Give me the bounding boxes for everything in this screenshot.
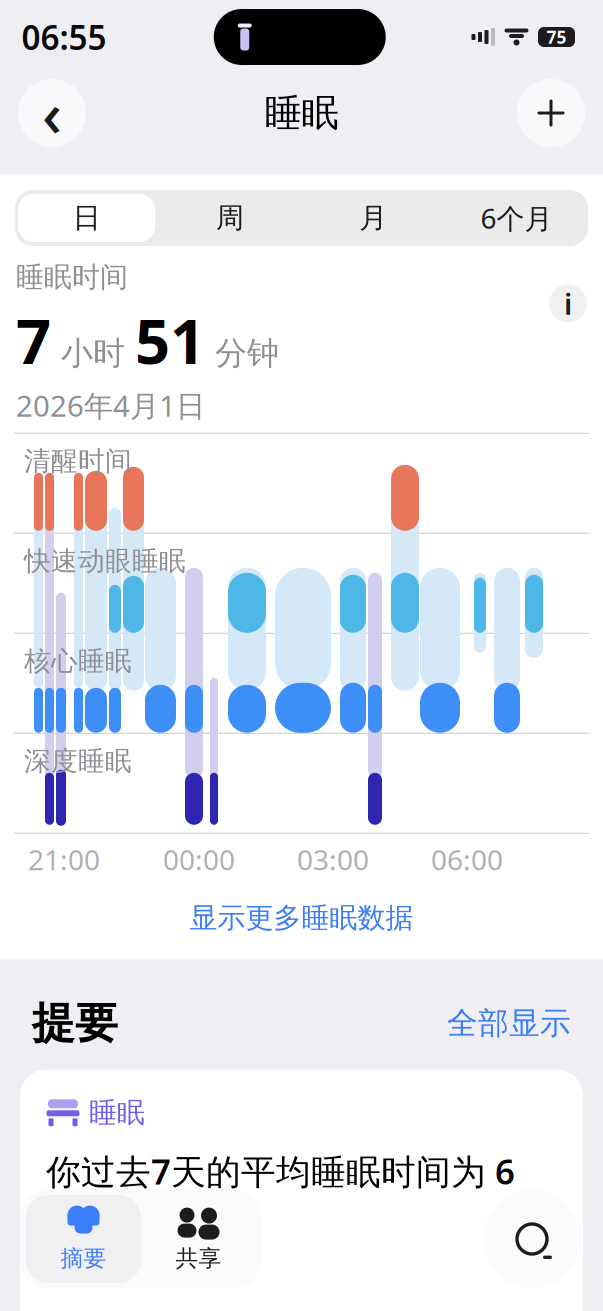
- button[interactable]: 全部显示: [447, 1005, 571, 1042]
- staticText: 51: [135, 299, 205, 381]
- button[interactable]: 返回: [18, 72, 86, 154]
- staticText: 摘要: [60, 1245, 106, 1272]
- button[interactable]: 添加: [517, 79, 585, 147]
- staticText: 日: [73, 201, 101, 235]
- staticText: 21:00: [28, 841, 100, 878]
- staticText: 月: [359, 201, 387, 235]
- staticText: 75: [546, 25, 566, 48]
- staticText: 提要: [32, 997, 118, 1050]
- staticText: 你过去7天的平均睡眠时间为 6 小时: [46, 1148, 515, 1237]
- staticText: 6个月: [480, 199, 552, 237]
- staticText: 2026年4月1日: [16, 386, 205, 425]
- button[interactable]: 6个月: [445, 190, 588, 246]
- staticText: 睡眠时间: [16, 260, 128, 294]
- staticText: 全部显示: [447, 1005, 571, 1042]
- button[interactable]: 周: [158, 190, 301, 246]
- staticText: 00:00: [163, 841, 235, 878]
- staticText: 06:55: [21, 15, 106, 59]
- button[interactable]: 日: [15, 190, 158, 246]
- staticText: i: [564, 284, 572, 323]
- staticText: 共享: [175, 1245, 221, 1272]
- staticText: 显示更多睡眠数据: [189, 901, 413, 935]
- button[interactable]: 共享: [141, 1195, 256, 1283]
- staticText: 周: [216, 201, 244, 235]
- button[interactable]: 月: [301, 190, 445, 246]
- staticText: 快速动眼睡眠: [24, 545, 186, 578]
- button[interactable]: 睡眠: [20, 1070, 583, 1311]
- staticText: 47分钟。: [46, 1241, 191, 1287]
- staticText: 核心睡眠: [24, 645, 132, 678]
- staticText: 睡眠: [89, 1096, 145, 1130]
- button[interactable]: 摘要: [26, 1195, 141, 1283]
- staticText: 睡眠: [264, 90, 338, 136]
- staticText: 分钟: [205, 334, 279, 373]
- staticText: 清醒时间: [24, 445, 132, 478]
- button[interactable]: 搜索: [483, 1190, 581, 1288]
- staticText: 小时: [51, 334, 135, 373]
- staticText: 深度睡眠: [24, 745, 132, 778]
- staticText: 06:00: [431, 841, 503, 878]
- staticText: ‹: [42, 72, 62, 154]
- button[interactable]: 信息: [549, 284, 587, 323]
- staticText: 7: [16, 299, 51, 381]
- button[interactable]: 显示更多睡眠数据: [0, 877, 603, 959]
- staticText: 03:00: [297, 841, 369, 878]
